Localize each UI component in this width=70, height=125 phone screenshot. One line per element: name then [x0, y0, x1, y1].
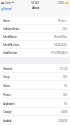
button[interactable]: Model Number: [0, 41, 70, 49]
staticText: Network: [3, 67, 12, 71]
staticText: 64 GB: [61, 110, 67, 114]
staticText: About: [32, 6, 39, 10]
button[interactable]: Photos: [0, 90, 70, 99]
button[interactable]: Songs: [0, 73, 70, 81]
staticText: Name: [3, 19, 10, 23]
staticText: Carrier: [5, 1, 11, 5]
button[interactable]: Name: [0, 17, 70, 25]
button[interactable]: General: [0, 6, 13, 12]
other: Battery 100 percent: [65, 2, 69, 4]
staticText: Capacity: [3, 110, 12, 114]
staticText: 29.24 GB: [58, 119, 67, 123]
staticText: Serial Number: [3, 51, 18, 55]
staticText: Available: [3, 119, 12, 123]
button[interactable]: Videos: [0, 81, 70, 90]
staticText: 625: [63, 75, 67, 79]
button[interactable]: Serial Number: [0, 49, 70, 57]
staticText: Software Version: [3, 27, 20, 31]
staticText: General: [3, 7, 12, 11]
staticText: Applications: [3, 102, 15, 106]
staticText: MQ8L2LL/A: [54, 43, 67, 47]
staticText: 58: [64, 102, 67, 106]
button[interactable]: Capacity: [0, 108, 70, 116]
staticText: 18: [64, 84, 67, 88]
staticText: Videos: [3, 84, 10, 88]
button[interactable]: Applications: [0, 99, 70, 108]
staticText: F17VMBQ4JCLV: [51, 51, 67, 55]
staticText: iPhone: [58, 19, 65, 23]
staticText: Model Name: [3, 35, 17, 39]
staticText: iPhone 8 Plus: [54, 35, 67, 39]
staticText: 100%: [58, 1, 64, 5]
staticText: Photos: [3, 93, 10, 97]
staticText: 12.4: [62, 27, 67, 31]
staticText: CO - 2K: [60, 67, 67, 71]
staticText: 9:41 AM: [31, 1, 39, 5]
button[interactable]: Model Name: [0, 33, 70, 41]
button[interactable]: Software Version: [0, 25, 70, 33]
button[interactable]: Network: [0, 64, 70, 73]
staticText: Songs: [3, 75, 10, 79]
staticText: Model Number: [3, 43, 19, 47]
staticText: 526: [63, 93, 67, 97]
button[interactable]: Available: [0, 116, 70, 125]
